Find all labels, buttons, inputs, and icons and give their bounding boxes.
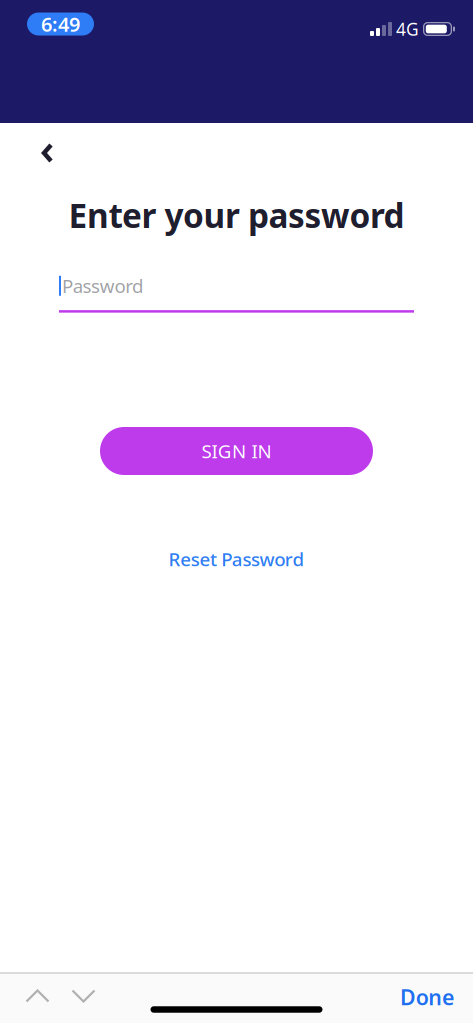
button[interactable]: SIGN IN [100,427,373,475]
button[interactable]: Done [400,983,454,1011]
staticText: Enter your password [68,193,404,237]
button[interactable]: Reset Password [169,547,304,571]
button[interactable]: Password [59,273,414,313]
staticText: Done [400,983,454,1011]
button[interactable]: Back [30,131,65,175]
button[interactable]: Next field [64,982,102,1009]
staticText: Password [62,273,143,298]
staticText: 4G [396,17,419,40]
staticText: 6:49 [41,11,80,37]
staticText: SIGN IN [201,439,272,463]
button[interactable]: Previous field [18,982,56,1009]
staticText: Reset Password [169,547,304,571]
